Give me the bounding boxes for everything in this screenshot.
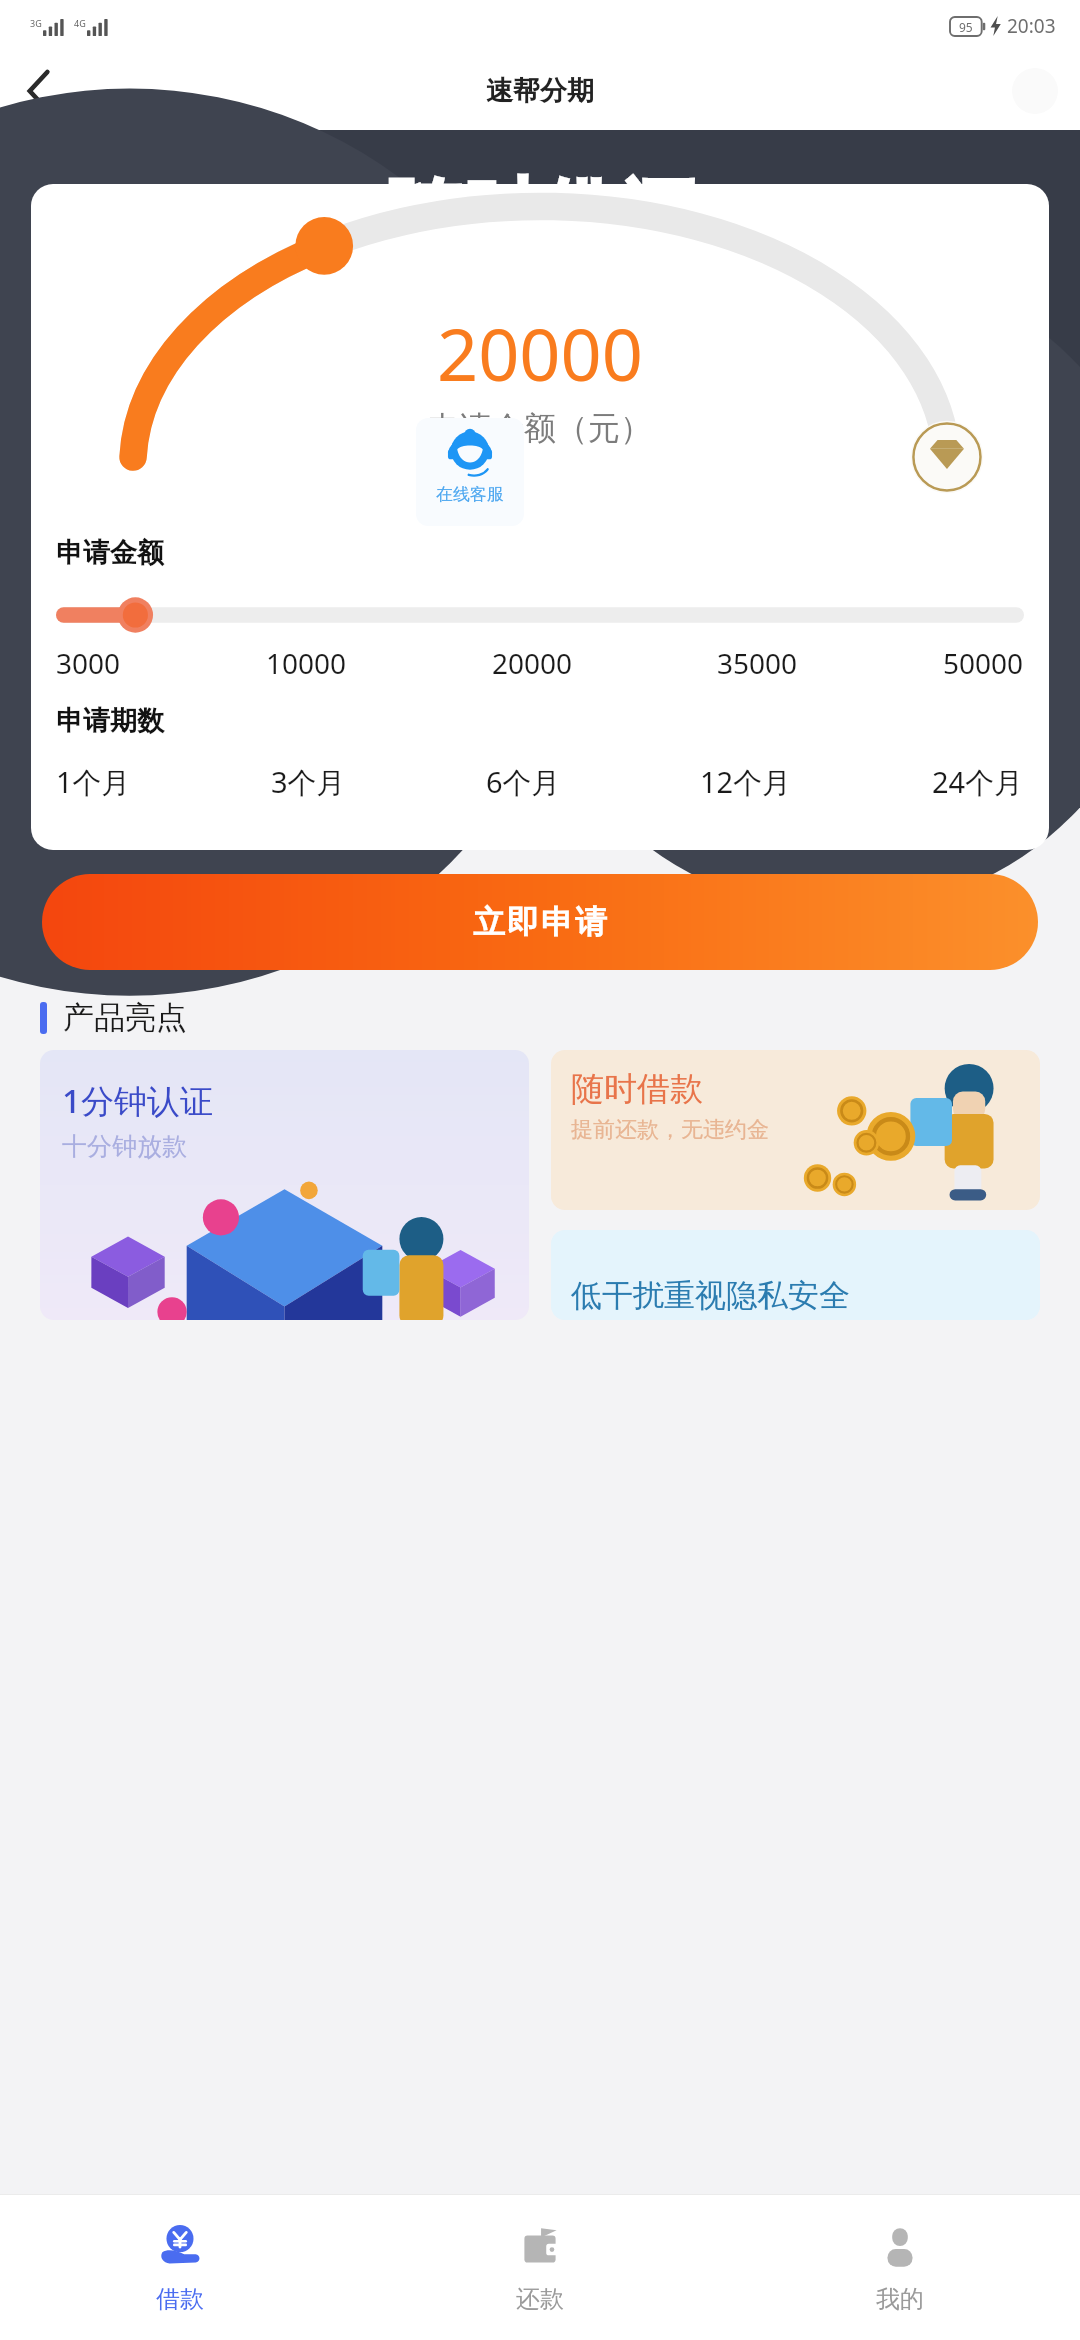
button[interactable]: 低干扰重视隐私安全 bbox=[551, 1230, 1040, 1320]
staticText: 6个月 bbox=[486, 762, 561, 802]
button[interactable]: 立即申请 bbox=[42, 874, 1038, 970]
staticText: 在线客服 bbox=[436, 484, 504, 505]
button[interactable]: 24个月 bbox=[932, 762, 1024, 802]
button[interactable]: 1分钟认证 bbox=[40, 1050, 529, 1320]
button[interactable]: 借款 bbox=[0, 2195, 360, 2340]
staticText: 我的 bbox=[876, 2284, 924, 2314]
staticText: 35000 bbox=[717, 644, 798, 682]
staticText: 产品亮点 bbox=[63, 998, 187, 1037]
staticText: 50000 bbox=[943, 644, 1024, 682]
button[interactable]: 我的 bbox=[720, 2195, 1080, 2340]
staticText: 3G bbox=[30, 17, 42, 29]
staticText: 低干扰重视隐私安全 bbox=[571, 1276, 850, 1315]
staticText: 提前还款，无违约金 bbox=[571, 1116, 769, 1144]
button[interactable]: 随时借款 bbox=[551, 1050, 1040, 1210]
staticText: 20000 bbox=[437, 304, 643, 402]
staticText: 随时借款 bbox=[571, 1068, 703, 1110]
button[interactable]: 1个月 bbox=[56, 762, 131, 802]
staticText: 速帮分期 bbox=[486, 74, 594, 108]
staticText: 立即申请 bbox=[472, 902, 608, 942]
staticText: 4G bbox=[74, 17, 86, 29]
button[interactable]: Back bbox=[8, 60, 70, 122]
staticText: 1个月 bbox=[56, 762, 131, 802]
staticText: 20:03 bbox=[1007, 13, 1056, 39]
staticText: 借款 bbox=[156, 2284, 204, 2314]
staticText: 1分钟认证 bbox=[62, 1078, 213, 1123]
button[interactable]: 还款 bbox=[360, 2195, 720, 2340]
staticText: 3000 bbox=[56, 644, 121, 682]
staticText: 12个月 bbox=[700, 762, 792, 802]
staticText: 十分钟放款 bbox=[62, 1131, 187, 1162]
staticText: 还款 bbox=[516, 2284, 564, 2314]
staticText: 申请金额 bbox=[56, 536, 164, 570]
staticText: 10000 bbox=[266, 644, 347, 682]
staticText: 20000 bbox=[492, 644, 573, 682]
staticText: 95 bbox=[959, 19, 973, 35]
button[interactable]: 在线客服 bbox=[416, 418, 524, 526]
staticText: 申请金额（元） bbox=[428, 408, 652, 448]
button[interactable]: Amount slider bbox=[56, 598, 1024, 632]
staticText: 3个月 bbox=[271, 762, 346, 802]
staticText: 24个月 bbox=[932, 762, 1024, 802]
button[interactable]: 12个月 bbox=[700, 762, 792, 802]
staticText: 随时借还 bbox=[384, 168, 696, 261]
button[interactable]: 3个月 bbox=[271, 762, 346, 802]
button[interactable]: 6个月 bbox=[486, 762, 561, 802]
staticText: 申请期数 bbox=[56, 704, 164, 738]
